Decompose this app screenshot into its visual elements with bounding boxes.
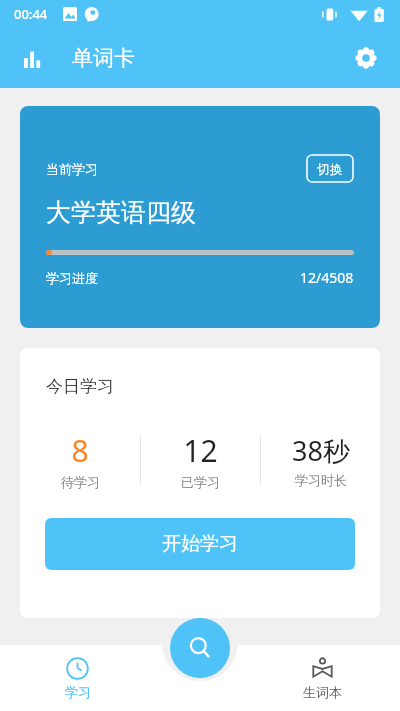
staticText: 大学英语四级 xyxy=(46,197,196,228)
staticText: 切换 xyxy=(317,161,343,177)
staticText: 12/4508 xyxy=(300,268,354,287)
staticText: 学习时长 xyxy=(295,472,347,488)
staticText: 单词卡 xyxy=(72,45,135,71)
button[interactable]: Search xyxy=(170,618,230,678)
button[interactable]: 学习 xyxy=(0,653,155,704)
staticText: 12 xyxy=(183,430,218,471)
staticText: 生词本 xyxy=(303,684,342,700)
button[interactable]: Settings xyxy=(342,34,390,82)
button[interactable]: Statistics xyxy=(10,34,58,82)
staticText: 待学习 xyxy=(61,474,100,490)
button[interactable]: 当前学习 xyxy=(20,106,380,328)
button[interactable]: 生词本 xyxy=(245,653,400,704)
button[interactable]: 开始学习 xyxy=(45,518,355,570)
staticText: 8 xyxy=(71,430,89,471)
staticText: 已学习 xyxy=(181,474,220,490)
staticText: 当前学习 xyxy=(46,161,98,177)
button[interactable]: 切换 xyxy=(306,154,354,183)
staticText: 学习 xyxy=(65,684,91,700)
staticText: 学习进度 xyxy=(46,270,98,286)
staticText: 开始学习 xyxy=(162,532,238,556)
staticText: 今日学习 xyxy=(46,376,114,397)
staticText: 00:44 xyxy=(14,5,48,23)
staticText: 38秒 xyxy=(292,432,350,469)
